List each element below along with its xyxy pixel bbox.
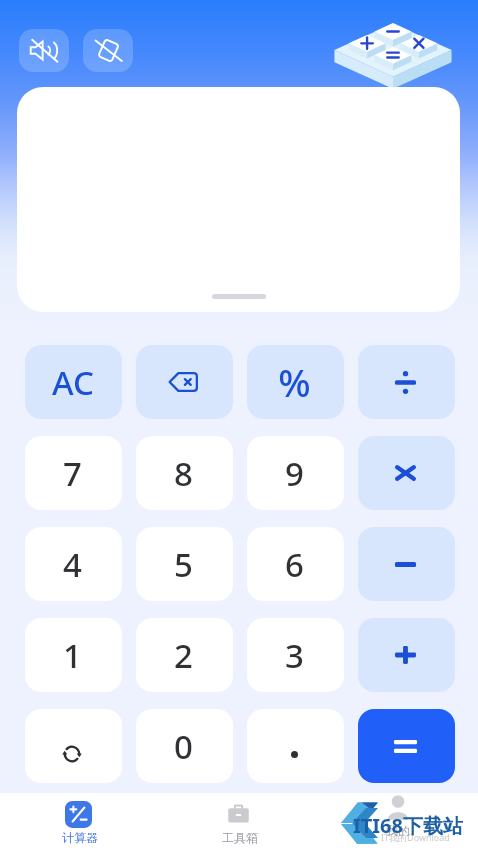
button[interactable]: History [25,709,122,783]
button[interactable]: AC [25,345,122,419]
button[interactable]: Plus [358,618,455,692]
button[interactable] [247,709,344,783]
staticText: IT我的Download [381,831,450,843]
staticText: 0 [174,724,193,769]
staticText: % [278,356,311,408]
staticText: 8 [174,451,193,496]
staticText: 3 [285,633,304,678]
staticText: 2 [174,633,193,678]
button[interactable]: 5 [136,527,233,601]
button[interactable]: Mute [19,29,69,72]
button[interactable]: 工具箱 [160,793,319,850]
button[interactable]: 3 [247,618,344,692]
staticText: 5 [174,542,193,587]
staticText: AC [52,360,94,405]
button[interactable]: Divide [358,345,455,419]
button[interactable]: 6 [247,527,344,601]
staticText: 我的 [386,823,410,838]
staticText: ITI68下载站 [353,812,463,839]
button[interactable] [319,793,478,850]
button[interactable]: Equals [358,709,455,783]
button[interactable]: Minus [358,527,455,601]
button[interactable]: % [247,345,344,419]
staticText: 计算器 [62,830,98,845]
button[interactable]: 2 [136,618,233,692]
staticText: 9 [285,451,304,496]
button[interactable]: 9 [247,436,344,510]
staticText: 6 [285,542,304,587]
staticText: 7 [63,451,82,496]
button[interactable]: 计算器 [0,793,160,850]
button[interactable]: Vibration off [83,29,133,72]
staticText: 工具箱 [222,830,258,845]
staticText: 4 [63,542,82,587]
button[interactable]: 1 [25,618,122,692]
button[interactable]: 4 [25,527,122,601]
button[interactable]: 7 [25,436,122,510]
button[interactable]: 8 [136,436,233,510]
button[interactable]: 0 [136,709,233,783]
button[interactable]: Multiply [358,436,455,510]
staticText: 1 [63,633,82,678]
button[interactable]: Backspace [136,345,233,419]
